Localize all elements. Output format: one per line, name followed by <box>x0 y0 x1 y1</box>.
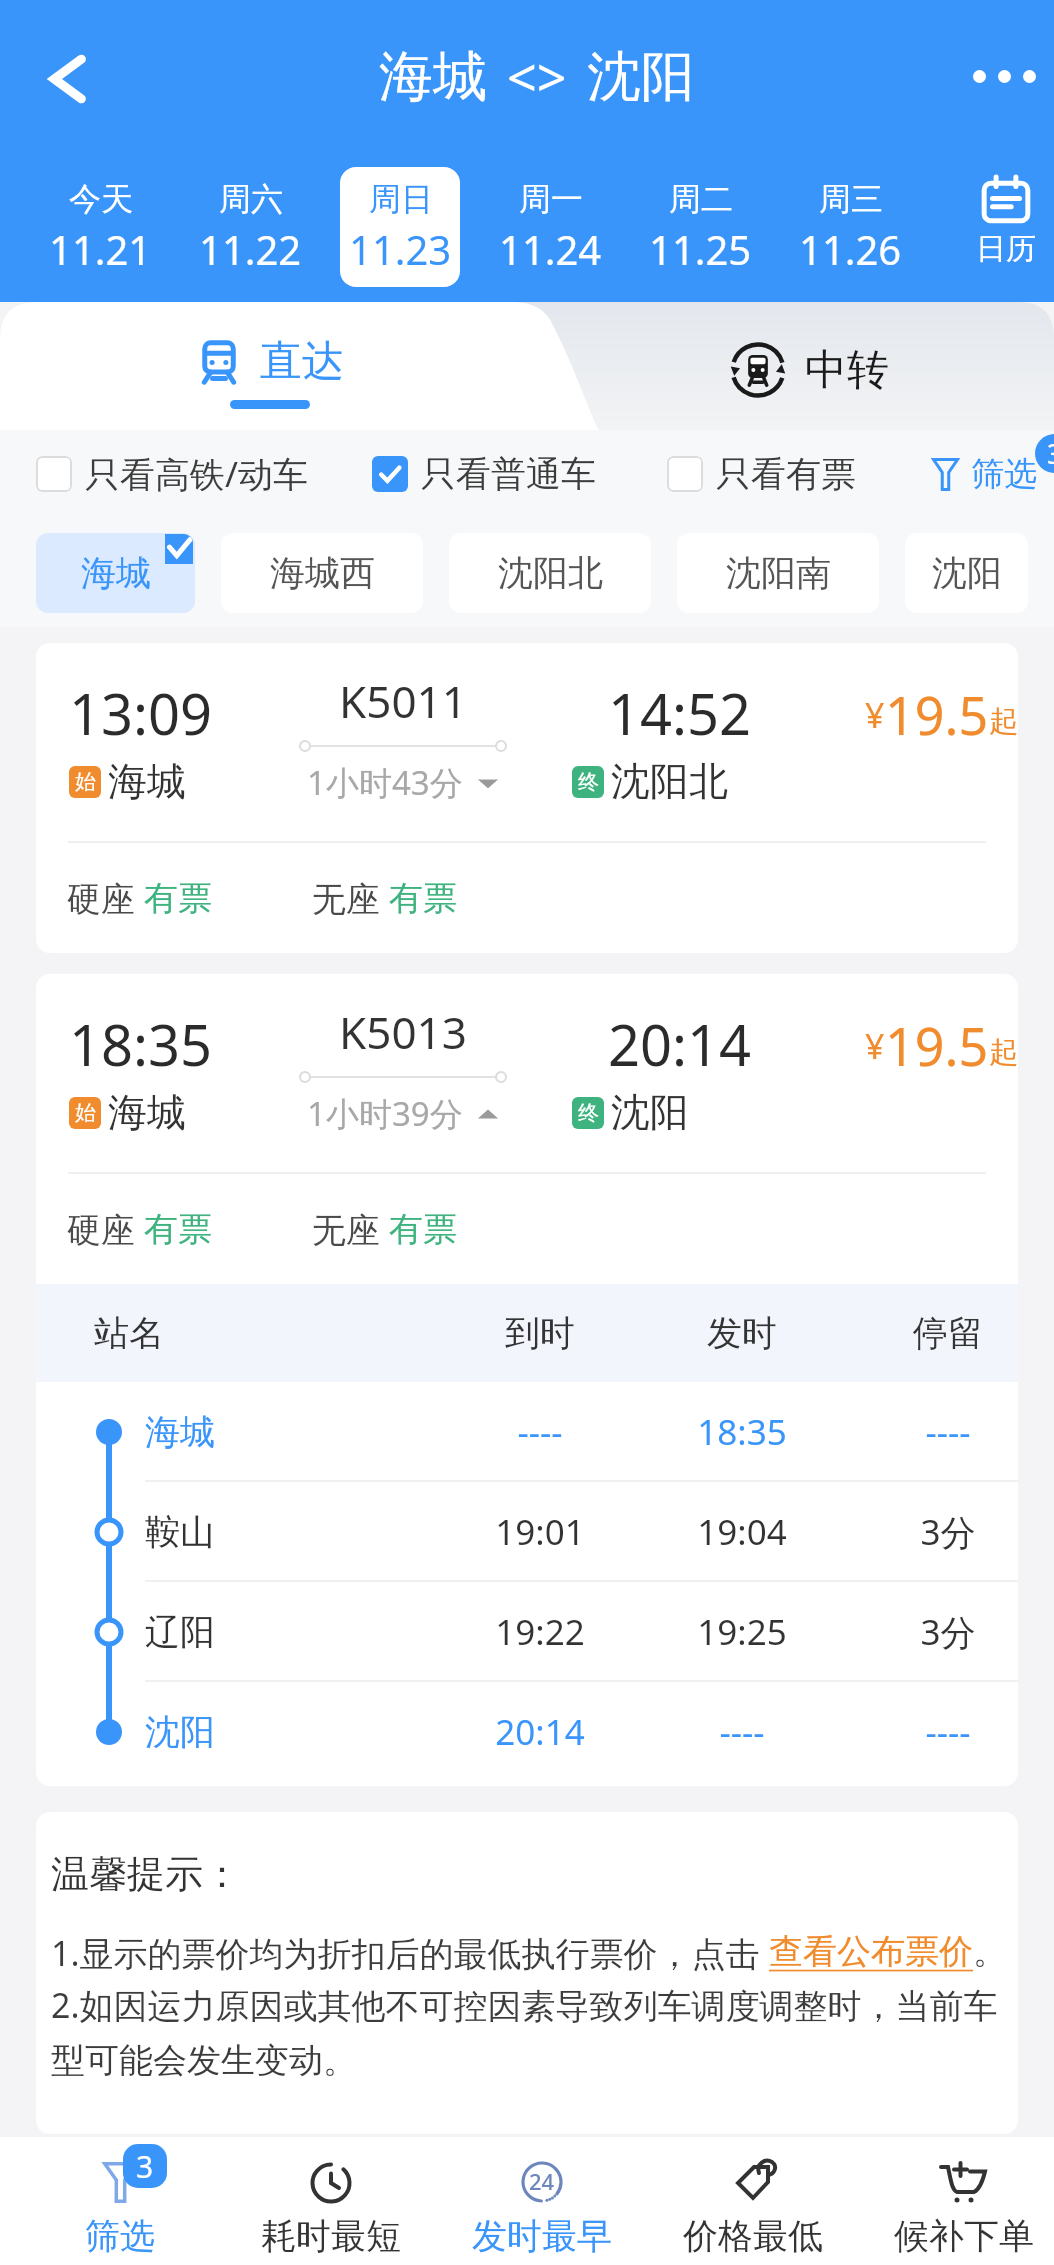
staticText: 周一 <box>519 179 583 219</box>
staticText: 11.23 <box>349 222 452 276</box>
staticText: 海城 <box>108 1088 186 1137</box>
staticText: 24 <box>529 2166 555 2196</box>
staticText: 。 <box>973 1930 1007 1973</box>
staticText: 11.24 <box>499 222 602 276</box>
staticText: 19.5 <box>885 679 989 750</box>
button[interactable]: 沈阳北 <box>449 533 651 613</box>
staticText: 海城 <box>145 1410 215 1454</box>
button[interactable]: 筛选 <box>921 430 1054 518</box>
staticText: 今天 <box>69 179 133 219</box>
staticText: 11.21 <box>49 222 152 276</box>
button[interactable]: 中转 <box>537 302 1054 430</box>
staticText: ---- <box>848 1708 1018 1756</box>
staticText: 直达 <box>260 335 344 388</box>
staticText: 19:22 <box>440 1608 640 1656</box>
button[interactable]: 周日 <box>325 152 475 302</box>
staticText: 日历 <box>976 230 1036 268</box>
staticText: 14:52 <box>608 675 752 751</box>
staticText: 无座 <box>312 1206 389 1252</box>
button[interactable]: 周二 <box>625 152 775 302</box>
button[interactable]: 周六 <box>175 152 325 302</box>
staticText: 站名 <box>94 1311 164 1355</box>
button[interactable]: 周一 <box>475 152 625 302</box>
staticText: 起 <box>989 703 1018 740</box>
staticText: 1小时39分 <box>307 1091 463 1136</box>
staticText: K5011 <box>339 671 467 731</box>
staticText: 停留 <box>848 1311 1018 1355</box>
staticText: 海城 <box>81 551 151 595</box>
staticText: 始 <box>75 1100 96 1126</box>
button[interactable]: 价格最低 <box>632 2137 843 2265</box>
staticText: 鞍山 <box>145 1510 215 1554</box>
button[interactable]: 只看高铁/动车 <box>36 450 309 498</box>
staticText: 有票 <box>389 1208 457 1251</box>
button[interactable]: 18:35 <box>36 974 1018 1284</box>
button[interactable]: 3 <box>0 2137 210 2265</box>
staticText: 价格最低 <box>683 2214 823 2258</box>
button[interactable]: 周三 <box>775 152 925 302</box>
button[interactable]: 沈阳南 <box>677 533 879 613</box>
staticText: ---- <box>642 1708 842 1756</box>
staticText: 有票 <box>389 877 457 920</box>
staticText: 筛选 <box>85 2214 155 2258</box>
button[interactable]: Back <box>17 29 117 129</box>
button[interactable]: More options <box>938 26 1038 126</box>
staticText: 海城 <box>108 757 186 806</box>
staticText: 1小时43分 <box>307 760 463 805</box>
button[interactable]: 海城西 <box>221 533 423 613</box>
staticText: 有票 <box>144 877 212 920</box>
button[interactable]: 候补下单 <box>843 2137 1054 2265</box>
staticText: 19:25 <box>642 1608 842 1656</box>
staticText: 11.22 <box>199 222 302 276</box>
staticText: 周日 <box>369 179 433 219</box>
staticText: 终 <box>578 769 599 795</box>
staticText: 起 <box>989 1034 1018 1071</box>
button[interactable]: 耗时最短 <box>210 2137 421 2265</box>
staticText: 19.5 <box>885 1010 989 1081</box>
staticText: 温馨提示： <box>51 1850 241 1898</box>
button[interactable]: 直达 <box>0 302 537 430</box>
staticText: 周二 <box>669 179 733 219</box>
staticText: 查看公布票价 <box>769 1930 973 1973</box>
staticText: 硬座 <box>67 875 144 921</box>
button[interactable]: 只看普通车 <box>372 452 596 496</box>
staticText: 3分 <box>848 1508 1018 1556</box>
staticText: 发时 <box>642 1311 842 1355</box>
staticText: <> <box>507 41 567 112</box>
staticText: 沈阳北 <box>611 757 728 806</box>
staticText: 1.显示的票价均为折扣后的最低执行票价，点击 <box>51 1930 769 1976</box>
staticText: 到时 <box>440 1311 640 1355</box>
staticText: 沈阳 <box>611 1088 689 1137</box>
staticText: ---- <box>440 1408 640 1456</box>
staticText: 3分 <box>848 1608 1018 1656</box>
staticText: 沈阳 <box>587 43 695 111</box>
staticText: 候补下单 <box>894 2214 1034 2258</box>
button[interactable]: 13:09 <box>36 643 1018 953</box>
staticText: 19:01 <box>440 1508 640 1556</box>
staticText: 海城西 <box>270 551 375 595</box>
staticText: 沈阳 <box>932 551 1002 595</box>
staticText: 20:14 <box>440 1708 640 1756</box>
button[interactable]: 24 <box>421 2137 632 2265</box>
staticText: 发时最早 <box>472 2214 612 2258</box>
staticText: ¥ <box>865 1023 885 1069</box>
staticText: 耗时最短 <box>261 2214 401 2258</box>
staticText: 11.25 <box>649 222 752 276</box>
staticText: 沈阳南 <box>726 551 831 595</box>
staticText: 有票 <box>144 1208 212 1251</box>
staticText: 只看有票 <box>716 452 856 496</box>
staticText: 3 <box>1047 435 1054 472</box>
button[interactable]: Calendar <box>925 152 1054 302</box>
button[interactable]: 沈阳 <box>905 533 1028 613</box>
staticText: 只看普通车 <box>421 452 596 496</box>
button[interactable]: 今天 <box>25 152 175 302</box>
button[interactable]: 海城 <box>36 533 195 613</box>
button[interactable]: 只看有票 <box>667 452 856 496</box>
staticText: 硬座 <box>67 1206 144 1252</box>
staticText: 18:35 <box>642 1408 842 1456</box>
staticText: 辽阳 <box>145 1610 215 1654</box>
staticText: 中转 <box>805 344 889 397</box>
staticText: 3 <box>136 2146 154 2187</box>
staticText: 海城 <box>379 43 487 111</box>
staticText: 18:35 <box>69 1006 213 1082</box>
